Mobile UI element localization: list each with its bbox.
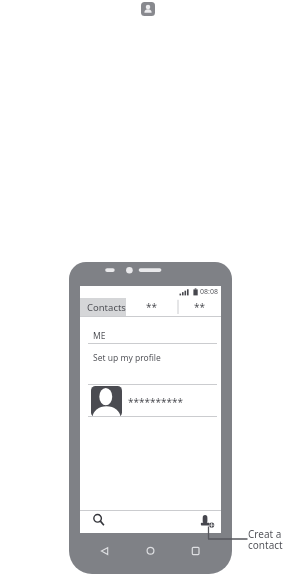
button[interactable]: Search <box>92 513 106 527</box>
button[interactable]: ********** <box>80 385 221 417</box>
button[interactable]: Set up my profile <box>80 344 221 385</box>
staticText: ** <box>194 300 206 314</box>
button[interactable]: Recent apps <box>189 544 203 558</box>
button[interactable]: Contacts <box>80 298 126 317</box>
button[interactable]: Create a contact <box>200 513 214 527</box>
button[interactable]: ** <box>178 298 221 317</box>
staticText: ********** <box>128 395 184 409</box>
button[interactable]: ME <box>80 317 221 344</box>
staticText: 08:08 <box>200 287 218 297</box>
staticText: ** <box>146 300 158 314</box>
staticText: Set up my profile <box>93 352 161 364</box>
staticText: contact <box>248 538 283 552</box>
button[interactable]: Home <box>144 544 158 558</box>
staticText: Creat a <box>248 527 282 541</box>
staticText: ME <box>93 330 106 342</box>
button[interactable]: Back <box>100 544 114 558</box>
staticText: Contacts <box>87 301 126 314</box>
button[interactable]: Contacts app icon <box>141 2 155 16</box>
button[interactable]: ** <box>126 298 178 317</box>
